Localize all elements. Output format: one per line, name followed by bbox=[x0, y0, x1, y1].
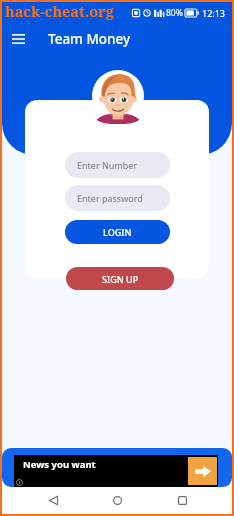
staticText: LOGIN bbox=[103, 226, 132, 238]
button[interactable]: Open navigation menu bbox=[2, 23, 34, 55]
button[interactable]: Open advertisement bbox=[188, 457, 217, 485]
staticText: Team Money bbox=[48, 30, 131, 48]
button[interactable]: News you want bbox=[14, 455, 218, 487]
button[interactable]: LOGIN bbox=[65, 220, 170, 244]
staticText: 80% bbox=[166, 7, 183, 19]
staticText: SIGN UP bbox=[102, 273, 139, 285]
staticText: 12:13 bbox=[202, 7, 226, 19]
staticText: Enter password bbox=[77, 192, 143, 204]
staticText: Enter Number bbox=[77, 159, 138, 171]
staticText: hack-cheat.org bbox=[5, 1, 114, 21]
button[interactable]: SIGN UP bbox=[66, 267, 174, 290]
staticText: News you want bbox=[23, 458, 96, 471]
button[interactable]: Enter password bbox=[65, 185, 170, 211]
button[interactable]: Home bbox=[103, 487, 131, 514]
button[interactable]: Recent apps bbox=[168, 487, 196, 514]
button[interactable]: Back bbox=[39, 487, 67, 514]
button[interactable]: Enter Number bbox=[65, 152, 170, 178]
